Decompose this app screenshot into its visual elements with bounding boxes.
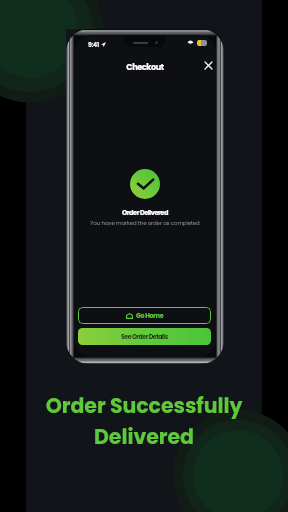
- button[interactable]: See Order Details: [78, 328, 211, 345]
- staticText: Checkout: [74, 61, 216, 72]
- staticText: You have marked the order as completed: [74, 219, 216, 227]
- button[interactable]: Go Home: [78, 307, 211, 324]
- staticText: Order Successfully Delivered: [26, 391, 262, 451]
- staticText: 9:41: [88, 40, 100, 49]
- staticText: See Order Details: [121, 332, 168, 341]
- staticText: Order Delivered: [74, 208, 216, 217]
- button[interactable]: Close: [201, 58, 215, 72]
- staticText: Go Home: [136, 311, 164, 320]
